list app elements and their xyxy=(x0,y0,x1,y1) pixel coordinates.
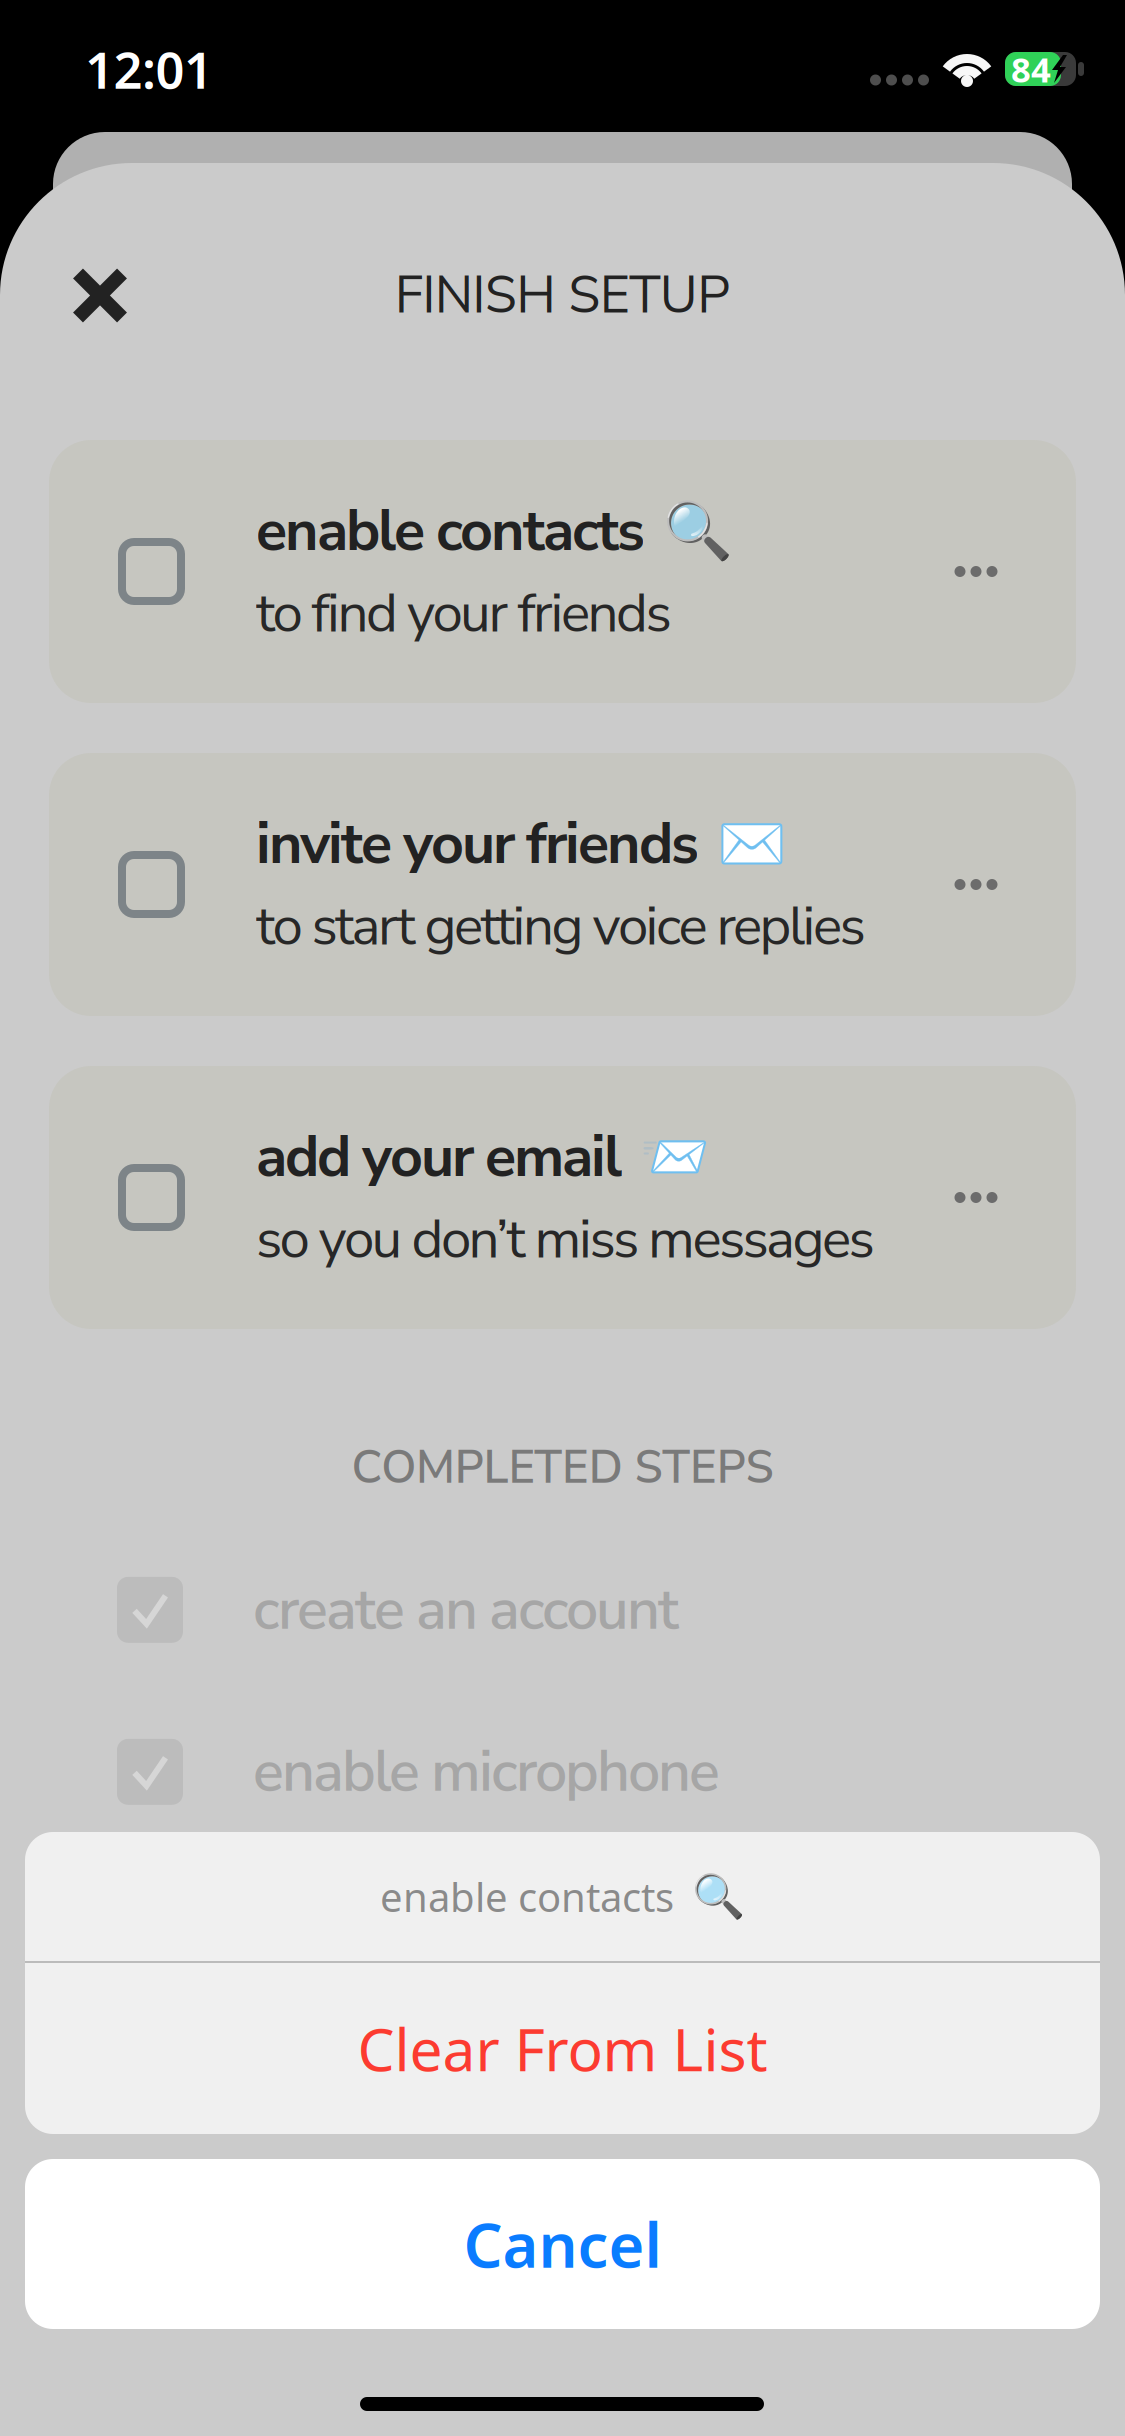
staticText: to find your friends xyxy=(256,576,671,651)
staticText: 12:01 xyxy=(85,35,213,103)
button[interactable]: More options xyxy=(49,824,1036,944)
staticText: FINISH SETUP xyxy=(395,260,730,331)
staticText: invite your friends xyxy=(256,805,699,883)
button[interactable]: Close xyxy=(0,236,164,354)
staticText: to start getting voice replies xyxy=(256,889,865,964)
button[interactable]: More options xyxy=(49,511,1036,631)
staticText: Clear From List xyxy=(357,2009,767,2087)
staticText: 📨 xyxy=(640,1125,710,1189)
staticText: 🔍 xyxy=(663,499,733,563)
staticText: add your email xyxy=(256,1118,622,1196)
staticText: 84 xyxy=(1011,46,1051,92)
staticText: ✉️ xyxy=(717,812,787,876)
button[interactable]: More options xyxy=(49,1137,1036,1257)
staticText: enable contacts xyxy=(256,492,645,570)
staticText: COMPLETED STEPS xyxy=(351,1437,774,1499)
staticText: enable microphone xyxy=(253,1733,720,1811)
staticText: 🔍 xyxy=(692,1872,745,1921)
staticText: Cancel xyxy=(463,2203,661,2285)
staticText: so you don’t miss messages xyxy=(256,1202,874,1277)
staticText: create an account xyxy=(253,1571,679,1649)
button[interactable]: invite your friends xyxy=(49,753,1076,1016)
staticText: enable contacts xyxy=(380,1870,674,1923)
button[interactable]: add your email xyxy=(49,1066,1076,1329)
button[interactable]: enable contacts xyxy=(49,440,1076,703)
button[interactable]: Cancel xyxy=(25,2159,1100,2329)
button[interactable]: Clear From List xyxy=(25,1963,1100,2134)
